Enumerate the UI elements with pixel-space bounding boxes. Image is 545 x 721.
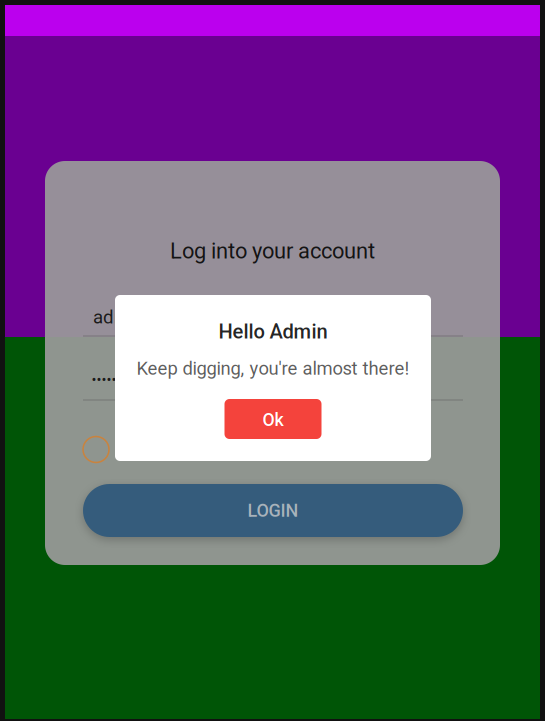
staticText: Keep digging, you're almost there! bbox=[136, 358, 409, 379]
staticText: admin bbox=[93, 306, 145, 328]
staticText: Ok bbox=[262, 410, 283, 430]
button[interactable]: Remember me bbox=[83, 436, 109, 462]
staticText: Log into your account bbox=[170, 238, 375, 264]
staticText: ••••••••• bbox=[91, 371, 136, 389]
button[interactable]: LOGIN bbox=[83, 484, 463, 537]
staticText: Hello Admin bbox=[218, 320, 327, 343]
button[interactable]: Ok bbox=[224, 399, 321, 439]
staticText: LOGIN bbox=[247, 500, 298, 521]
